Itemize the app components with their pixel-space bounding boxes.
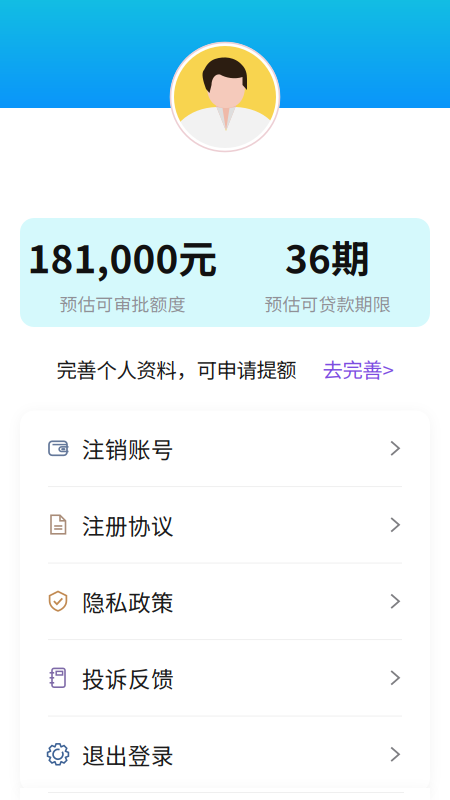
staticText: 预估可贷款期限 xyxy=(264,290,390,317)
button[interactable]: 去完善> xyxy=(322,354,393,383)
staticText: 181,000元 xyxy=(27,228,217,284)
staticText: 36期 xyxy=(285,228,370,284)
button[interactable]: 注销账号 xyxy=(20,410,430,486)
button[interactable]: 退出登录 xyxy=(20,716,430,792)
staticText: 投诉反馈 xyxy=(82,661,174,694)
staticText: 隐私政策 xyxy=(82,585,174,618)
staticText: 注销账号 xyxy=(82,432,174,465)
staticText: 注册协议 xyxy=(82,508,174,541)
button[interactable]: 隐私政策 xyxy=(20,563,430,639)
button[interactable]: 注册协议 xyxy=(20,487,430,562)
staticText: 退出登录 xyxy=(82,738,174,771)
staticText: 去完善> xyxy=(322,354,393,383)
button[interactable]: 投诉反馈 xyxy=(20,640,430,715)
staticText: 预估可审批额度 xyxy=(59,290,185,317)
staticText: 完善个人资料，可申请提额 xyxy=(56,354,296,383)
